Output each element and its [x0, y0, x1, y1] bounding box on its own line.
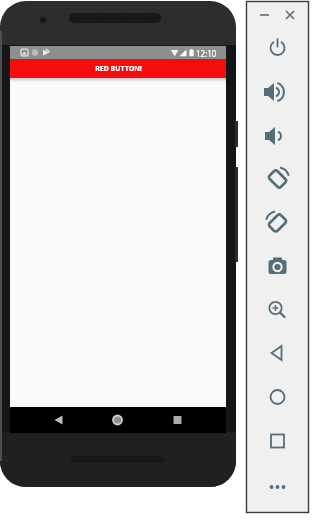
button[interactable] [246, 328, 309, 371]
button[interactable] [246, 285, 309, 328]
button[interactable] [246, 156, 309, 199]
button[interactable] [246, 457, 309, 500]
button[interactable] [246, 242, 309, 285]
button[interactable] [246, 27, 309, 70]
button[interactable]: RED BUTTON! [10, 59, 226, 78]
button[interactable] [246, 70, 309, 113]
button[interactable] [246, 1, 277, 27]
staticText: RED BUTTON! [95, 64, 142, 74]
button[interactable] [246, 199, 309, 242]
button[interactable] [82, 407, 154, 433]
button[interactable] [154, 407, 226, 433]
button[interactable] [277, 1, 309, 27]
button[interactable] [246, 414, 309, 457]
button[interactable] [246, 113, 309, 156]
button[interactable] [246, 371, 309, 414]
button[interactable] [10, 407, 82, 433]
staticText: 12:10 [196, 48, 217, 59]
